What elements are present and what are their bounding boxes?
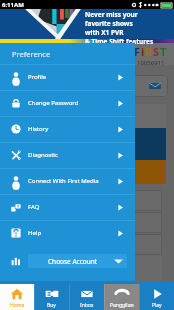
button[interactable]: Diagnostic <box>0 142 135 168</box>
staticText: Home <box>10 302 25 309</box>
button[interactable]: FAQ <box>0 194 135 220</box>
staticText: FAQ <box>28 203 40 211</box>
staticText: Never miss your <box>85 10 138 19</box>
staticText: 10056911 <box>137 59 165 65</box>
button[interactable]: Panggilan <box>104 284 139 310</box>
button[interactable]: Change Password <box>0 90 135 116</box>
staticText: History <box>28 125 49 133</box>
staticText: Connect With First Media <box>28 177 99 185</box>
button[interactable]: Help <box>0 220 135 246</box>
staticText: S <box>153 44 160 59</box>
button[interactable] <box>6 234 162 255</box>
button[interactable]: Buy <box>34 284 69 310</box>
staticText: Change Password <box>28 99 79 107</box>
staticText: Choose Account <box>48 257 98 266</box>
button[interactable]: History <box>0 116 135 142</box>
button[interactable]: Inbox <box>69 284 104 310</box>
button[interactable]: Play <box>139 284 174 310</box>
staticText: R <box>145 44 153 59</box>
staticText: Internet Up To 50 Mbps <box>14 111 103 122</box>
staticText: Inbox <box>80 302 94 309</box>
staticText: Buy Now <box>62 167 96 178</box>
staticText: Panggilan <box>110 302 134 309</box>
staticText: 6:11AM <box>2 1 24 9</box>
button[interactable]: Home <box>0 284 34 310</box>
button[interactable] <box>6 212 162 233</box>
button[interactable]: Choose Account <box>0 251 135 271</box>
button[interactable]: Connect With First Media <box>0 168 135 194</box>
staticText: Diagnostic <box>28 151 58 159</box>
staticText: favorite shows <box>85 19 133 28</box>
staticText: Profile <box>28 73 47 81</box>
staticText: Play <box>152 302 162 309</box>
staticText: with X1 PVR <box>85 28 124 37</box>
staticText: Promo Februari 2016 <box>12 133 71 155</box>
button[interactable] <box>6 190 162 211</box>
staticText: i <box>141 44 145 59</box>
staticText: & Time Shift features <box>85 37 154 44</box>
staticText: Preference <box>12 49 51 59</box>
staticText: F <box>134 44 141 59</box>
staticText: T <box>160 44 167 59</box>
staticText: Buy <box>47 302 56 309</box>
staticText: Help <box>28 229 42 237</box>
button[interactable]: Profile <box>0 64 135 90</box>
